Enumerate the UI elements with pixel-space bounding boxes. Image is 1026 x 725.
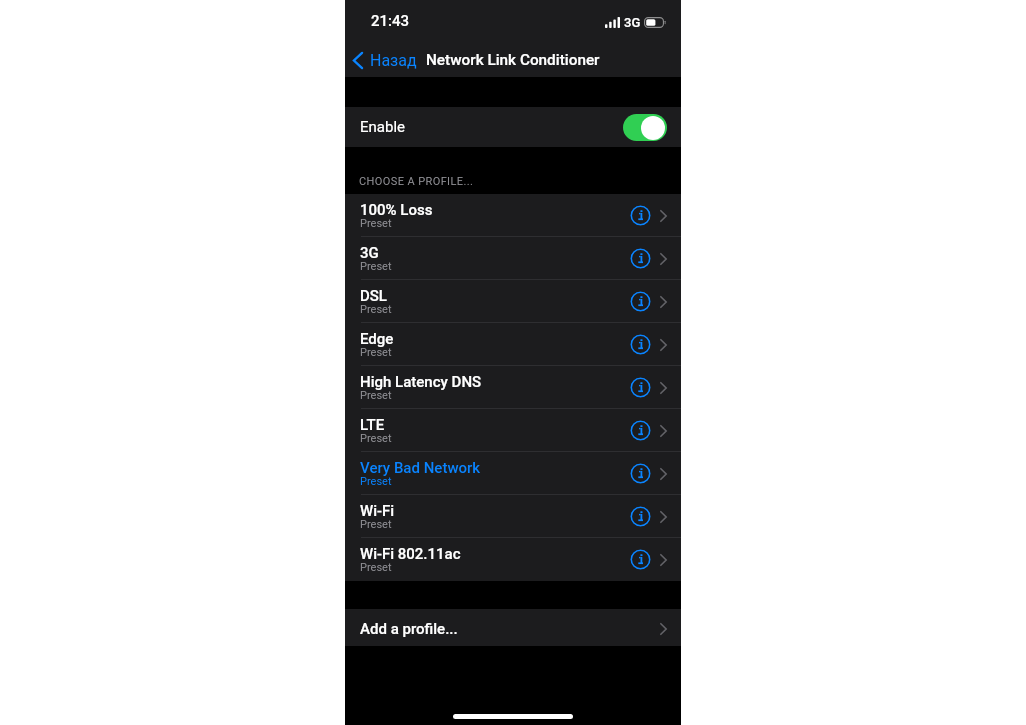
button[interactable]: Enable (345, 107, 681, 147)
button[interactable]: More info (630, 377, 651, 398)
button[interactable]: More info (630, 506, 651, 527)
staticText: Preset (360, 561, 392, 574)
staticText: Very Bad Network (360, 459, 481, 477)
staticText: Preset (360, 260, 392, 273)
staticText: Enable (360, 118, 405, 136)
button[interactable]: Very Bad Network (345, 452, 681, 495)
button[interactable]: 100% Loss (345, 194, 681, 237)
staticText: Preset (360, 432, 392, 445)
button[interactable]: LTE (345, 409, 681, 452)
staticText: 3G (624, 15, 641, 30)
button[interactable]: Enable toggle (623, 114, 667, 141)
button[interactable]: 3G (345, 237, 681, 280)
button[interactable]: More info (630, 463, 651, 484)
staticText: Wi-Fi 802.11ac (360, 545, 461, 563)
staticText: Preset (360, 475, 392, 488)
button[interactable]: Add a profile... (345, 609, 681, 646)
staticText: Add a profile... (360, 620, 458, 638)
button[interactable]: High Latency DNS (345, 366, 681, 409)
staticText: 100% Loss (360, 201, 433, 219)
button[interactable]: Wi-Fi 802.11ac (345, 538, 681, 581)
button[interactable]: More info (630, 420, 651, 441)
button[interactable]: More info (630, 291, 651, 312)
button[interactable]: More info (630, 334, 651, 355)
staticText: 21:43 (371, 12, 410, 30)
staticText: Wi-Fi (360, 502, 395, 520)
button[interactable]: Edge (345, 323, 681, 366)
staticText: Preset (360, 389, 392, 402)
staticText: High Latency DNS (360, 373, 482, 391)
button[interactable]: Назад (345, 48, 425, 73)
staticText: Edge (360, 330, 394, 348)
staticText: Preset (360, 518, 392, 531)
button[interactable]: More info (630, 205, 651, 226)
button[interactable]: Wi-Fi (345, 495, 681, 538)
staticText: Preset (360, 303, 392, 316)
staticText: CHOOSE A PROFILE... (359, 175, 474, 188)
staticText: DSL (360, 287, 387, 305)
staticText: 3G (360, 244, 379, 262)
staticText: Network Link Conditioner (426, 51, 600, 69)
staticText: Preset (360, 346, 392, 359)
button[interactable]: More info (630, 248, 651, 269)
staticText: LTE (360, 416, 385, 434)
button[interactable]: DSL (345, 280, 681, 323)
button[interactable]: More info (630, 549, 651, 570)
staticText: Назад (370, 51, 417, 70)
staticText: Preset (360, 217, 392, 230)
